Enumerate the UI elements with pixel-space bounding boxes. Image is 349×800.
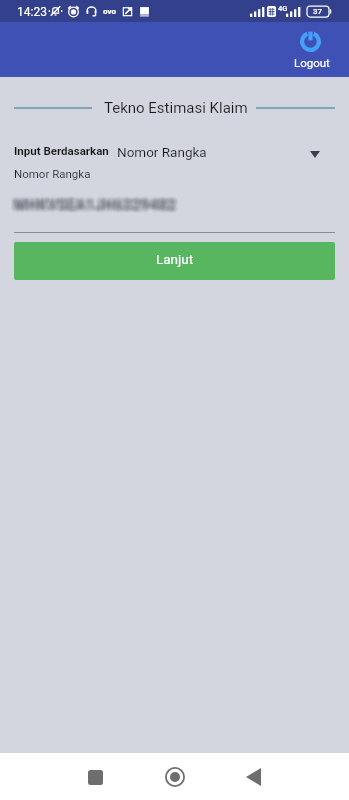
staticText: 4G	[278, 4, 288, 13]
staticText: MHKVSEA1JH6329482	[14, 194, 177, 210]
staticText: MHKVSEA1JH6329482	[14, 195, 177, 211]
staticText: MHKVSEA1JH6329482	[10, 195, 173, 211]
staticText: MHKVSEA1JH6329482	[13, 197, 176, 213]
staticText: MHKVSEA1JH6329482	[17, 198, 180, 214]
staticText: MHKVSEA1JH6329482	[15, 194, 178, 210]
staticText: MHKVSEA1JH6329482	[13, 199, 176, 215]
staticText: MHKVSEA1JH6329482	[14, 198, 177, 214]
staticText: MHKVSEA1JH6329482	[12, 197, 175, 213]
staticText: MHKVSEA1JH6329482	[16, 200, 179, 216]
staticText: MHKVSEA1JH6329482	[10, 198, 173, 214]
staticText: 14:23	[17, 5, 47, 19]
staticText: MHKVSEA1JH6329482	[17, 196, 180, 212]
staticText: MHKVSEA1JH6329482	[11, 199, 174, 215]
staticText: Lanjut	[156, 251, 194, 267]
staticText: MHKVSEA1JH6329482	[11, 198, 174, 214]
staticText: MHKVSEA1JH6329482	[11, 197, 174, 213]
staticText: MHKVSEA1JH6329482	[15, 196, 178, 212]
staticText: MHKVSEA1JH6329482	[17, 199, 180, 215]
staticText: MHKVSEA1JH6329482	[12, 199, 175, 215]
staticText: MHKVSEA1JH6329482	[11, 195, 174, 211]
staticText: MHKVSEA1JH6329482	[11, 200, 174, 216]
staticText: MHKVSEA1JH6329482	[18, 197, 181, 213]
staticText: MHKVSEA1JH6329482	[14, 196, 177, 212]
staticText: MHKVSEA1JH6329482	[16, 194, 179, 210]
staticText: MHKVSEA1JH6329482	[15, 197, 178, 213]
staticText: MHKVSEA1JH6329482	[12, 200, 175, 216]
staticText: MHKVSEA1JH6329482	[17, 197, 180, 213]
staticText: MHKVSEA1JH6329482	[14, 197, 177, 213]
staticText: MHKVSEA1JH6329482	[12, 195, 175, 211]
staticText: MHKVSEA1JH6329482	[15, 199, 178, 215]
staticText: MHKVSEA1JH6329482	[16, 198, 179, 214]
staticText: MHKVSEA1JH6329482	[16, 199, 179, 215]
staticText: MHKVSEA1JH6329482	[17, 200, 180, 216]
staticText: MHKVSEA1JH6329482	[15, 200, 178, 216]
staticText: Logout	[294, 56, 330, 69]
staticText: MHKVSEA1JH6329482	[10, 196, 173, 212]
staticText: MHKVSEA1JH6329482	[10, 199, 173, 215]
staticText: MHKVSEA1JH6329482	[15, 198, 178, 214]
button[interactable]: Nomor Rangka	[111, 138, 333, 166]
staticText: MHKVSEA1JH6329482	[18, 199, 181, 215]
button[interactable]: Lanjut	[14, 242, 335, 280]
staticText: MHKVSEA1JH6329482	[15, 195, 178, 211]
button[interactable]: Recent apps	[73, 755, 117, 799]
staticText: Tekno Estimasi Klaim	[104, 99, 248, 117]
staticText: MHKVSEA1JH6329482	[13, 196, 176, 212]
staticText: MHKVSEA1JH6329482	[16, 195, 179, 211]
staticText: 37	[313, 7, 323, 16]
staticText: MHKVSEA1JH6329482	[10, 197, 173, 213]
staticText: MHKVSEA1JH6329482	[13, 198, 176, 214]
staticText: Nomor Rangka	[14, 167, 91, 180]
staticText: MHKVSEA1JH6329482	[11, 196, 174, 212]
staticText: MHKVSEA1JH6329482	[18, 196, 181, 212]
staticText: MHKVSEA1JH6329482	[14, 199, 177, 215]
staticText: MHKVSEA1JH6329482	[12, 196, 175, 212]
staticText: MHKVSEA1JH6329482	[11, 194, 174, 210]
staticText: MHKVSEA1JH6329482	[13, 200, 176, 216]
staticText: ovo	[103, 7, 116, 16]
staticText: Nomor Rangka	[117, 144, 207, 160]
staticText: MHKVSEA1JH6329482	[16, 196, 179, 212]
staticText: MHKVSEA1JH6329482	[12, 194, 175, 210]
staticText: MHKVSEA1JH6329482	[17, 195, 180, 211]
button[interactable]: Home	[153, 755, 197, 799]
button[interactable]: Logout	[288, 26, 334, 73]
staticText: MHKVSEA1JH6329482	[13, 194, 176, 210]
staticText: MHKVSEA1JH6329482	[17, 194, 180, 210]
staticText: MHKVSEA1JH6329482	[12, 198, 175, 214]
button[interactable]: Back	[231, 755, 275, 799]
staticText: Input Berdasarkan	[14, 144, 109, 157]
staticText: MHKVSEA1JH6329482	[18, 195, 181, 211]
staticText: MHKVSEA1JH6329482	[18, 198, 181, 214]
staticText: MHKVSEA1JH6329482	[13, 195, 176, 211]
staticText: MHKVSEA1JH6329482	[14, 200, 177, 216]
staticText: MHKVSEA1JH6329482	[16, 197, 179, 213]
